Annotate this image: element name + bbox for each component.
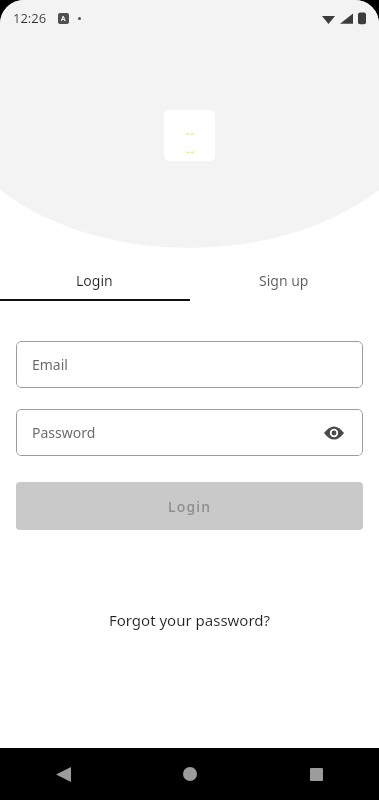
button[interactable]: Back [0,748,127,800]
button[interactable]: Show password [321,420,347,446]
staticText: Sign up [259,271,309,290]
staticText: Login [76,271,113,290]
staticText: 12:26 [13,9,47,27]
button[interactable]: Sign up [189,262,379,299]
staticText: A [61,14,66,24]
button[interactable]: Email [16,341,363,388]
button[interactable]: Login [0,262,189,299]
button[interactable]: Password [16,409,363,456]
button[interactable]: Home [127,748,253,800]
staticText: Password [32,423,96,442]
button[interactable]: Login [16,482,363,530]
staticText: Login [168,497,212,516]
button[interactable]: Recents [253,748,379,800]
staticText: Email [32,355,68,374]
button[interactable]: Forgot your password? [0,606,379,634]
